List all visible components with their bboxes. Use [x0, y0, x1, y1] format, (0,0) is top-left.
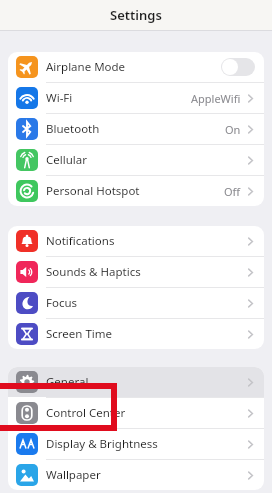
staticText: Sounds & Haptics — [46, 264, 141, 280]
button[interactable]: General — [8, 367, 264, 397]
staticText: Notifications — [46, 233, 115, 249]
staticText: AppleWifi — [191, 91, 241, 106]
staticText: Airplane Mode — [46, 59, 126, 75]
staticText: On — [225, 122, 241, 137]
button[interactable]: Display & Brightness — [8, 429, 264, 459]
staticText: Off — [224, 184, 241, 199]
staticText: Settings — [110, 6, 162, 24]
staticText: Focus — [46, 295, 78, 311]
staticText: General — [46, 374, 89, 390]
button[interactable]: Wallpaper — [8, 460, 264, 490]
button[interactable]: Focus — [8, 288, 264, 318]
button[interactable]: Wi-Fi — [8, 83, 264, 113]
staticText: Screen Time — [46, 326, 113, 342]
staticText: Wi-Fi — [46, 90, 73, 106]
staticText: Cellular — [46, 152, 87, 168]
button[interactable]: Personal Hotspot — [8, 176, 264, 206]
button[interactable]: Bluetooth — [8, 114, 264, 144]
button[interactable]: Airplane Mode toggle — [221, 58, 255, 76]
button[interactable]: Control Center — [8, 398, 264, 428]
button[interactable]: Sounds & Haptics — [8, 257, 264, 287]
button[interactable]: Airplane Mode — [8, 52, 264, 82]
staticText: Control Center — [46, 405, 126, 421]
button[interactable]: Cellular — [8, 145, 264, 175]
staticText: Personal Hotspot — [46, 183, 140, 199]
button[interactable]: Screen Time — [8, 319, 264, 349]
staticText: Bluetooth — [46, 121, 100, 137]
button[interactable]: Notifications — [8, 226, 264, 256]
staticText: Display & Brightness — [46, 436, 158, 452]
staticText: Wallpaper — [46, 467, 101, 483]
